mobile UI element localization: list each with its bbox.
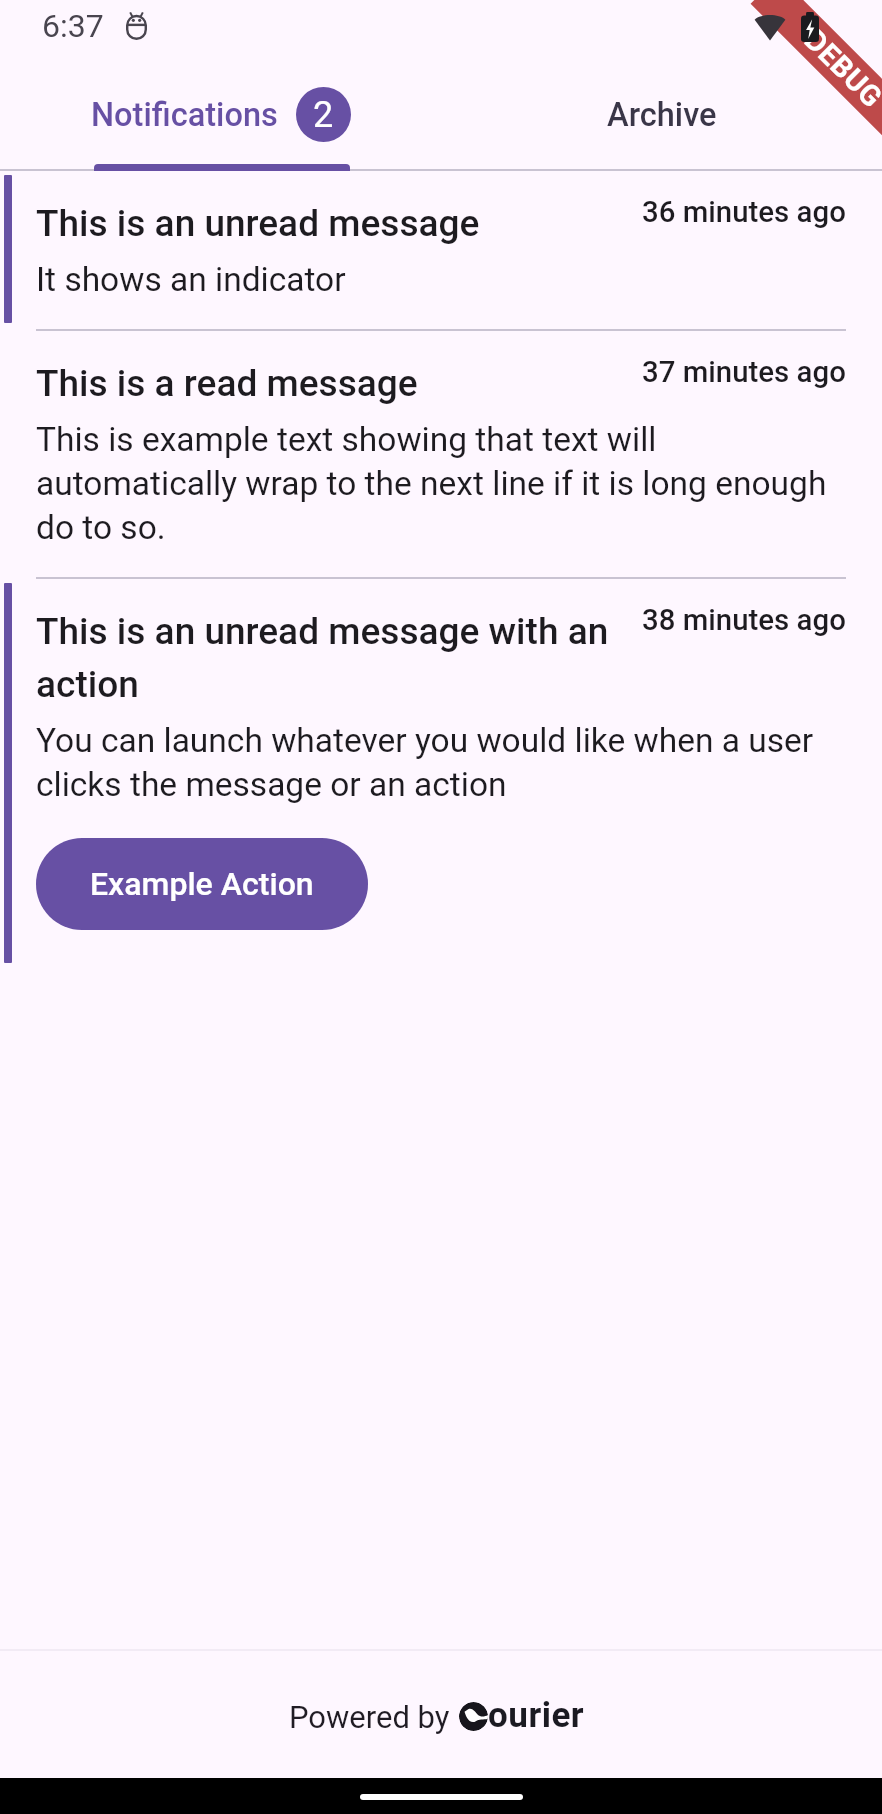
button[interactable]: 36 minutes ago bbox=[0, 171, 882, 331]
staticText: Powered by bbox=[289, 1699, 450, 1735]
staticText: This is a read message bbox=[36, 362, 418, 405]
staticText: Archive bbox=[607, 96, 717, 134]
button[interactable]: 37 minutes ago bbox=[0, 331, 882, 579]
button[interactable]: 38 minutes ago bbox=[0, 579, 882, 971]
other: Android bbox=[126, 12, 147, 40]
staticText: 38 minutes ago bbox=[642, 603, 846, 637]
other: Battery bbox=[801, 12, 819, 42]
other: Wi-Fi bbox=[754, 13, 786, 41]
staticText: It shows an indicator bbox=[36, 260, 346, 299]
staticText: 37 minutes ago bbox=[642, 355, 846, 389]
staticText: 2 bbox=[313, 94, 334, 136]
staticText: Notifications bbox=[91, 96, 278, 134]
button[interactable]: Example Action bbox=[36, 838, 368, 930]
staticText: Example Action bbox=[90, 865, 314, 903]
staticText: This is example text showing that text w… bbox=[36, 420, 846, 547]
staticText: This is an unread message bbox=[36, 202, 480, 245]
staticText: 36 minutes ago bbox=[642, 195, 846, 229]
button[interactable]: Notifications bbox=[0, 72, 441, 169]
staticText: You can launch whatever you would like w… bbox=[36, 721, 846, 804]
button[interactable]: Archive bbox=[441, 72, 882, 169]
staticText: 6:37 bbox=[42, 7, 104, 45]
staticText: DEBUG bbox=[798, 23, 882, 115]
staticText: ourier bbox=[488, 1695, 585, 1736]
staticText: This is an unread message with an action bbox=[36, 610, 636, 706]
